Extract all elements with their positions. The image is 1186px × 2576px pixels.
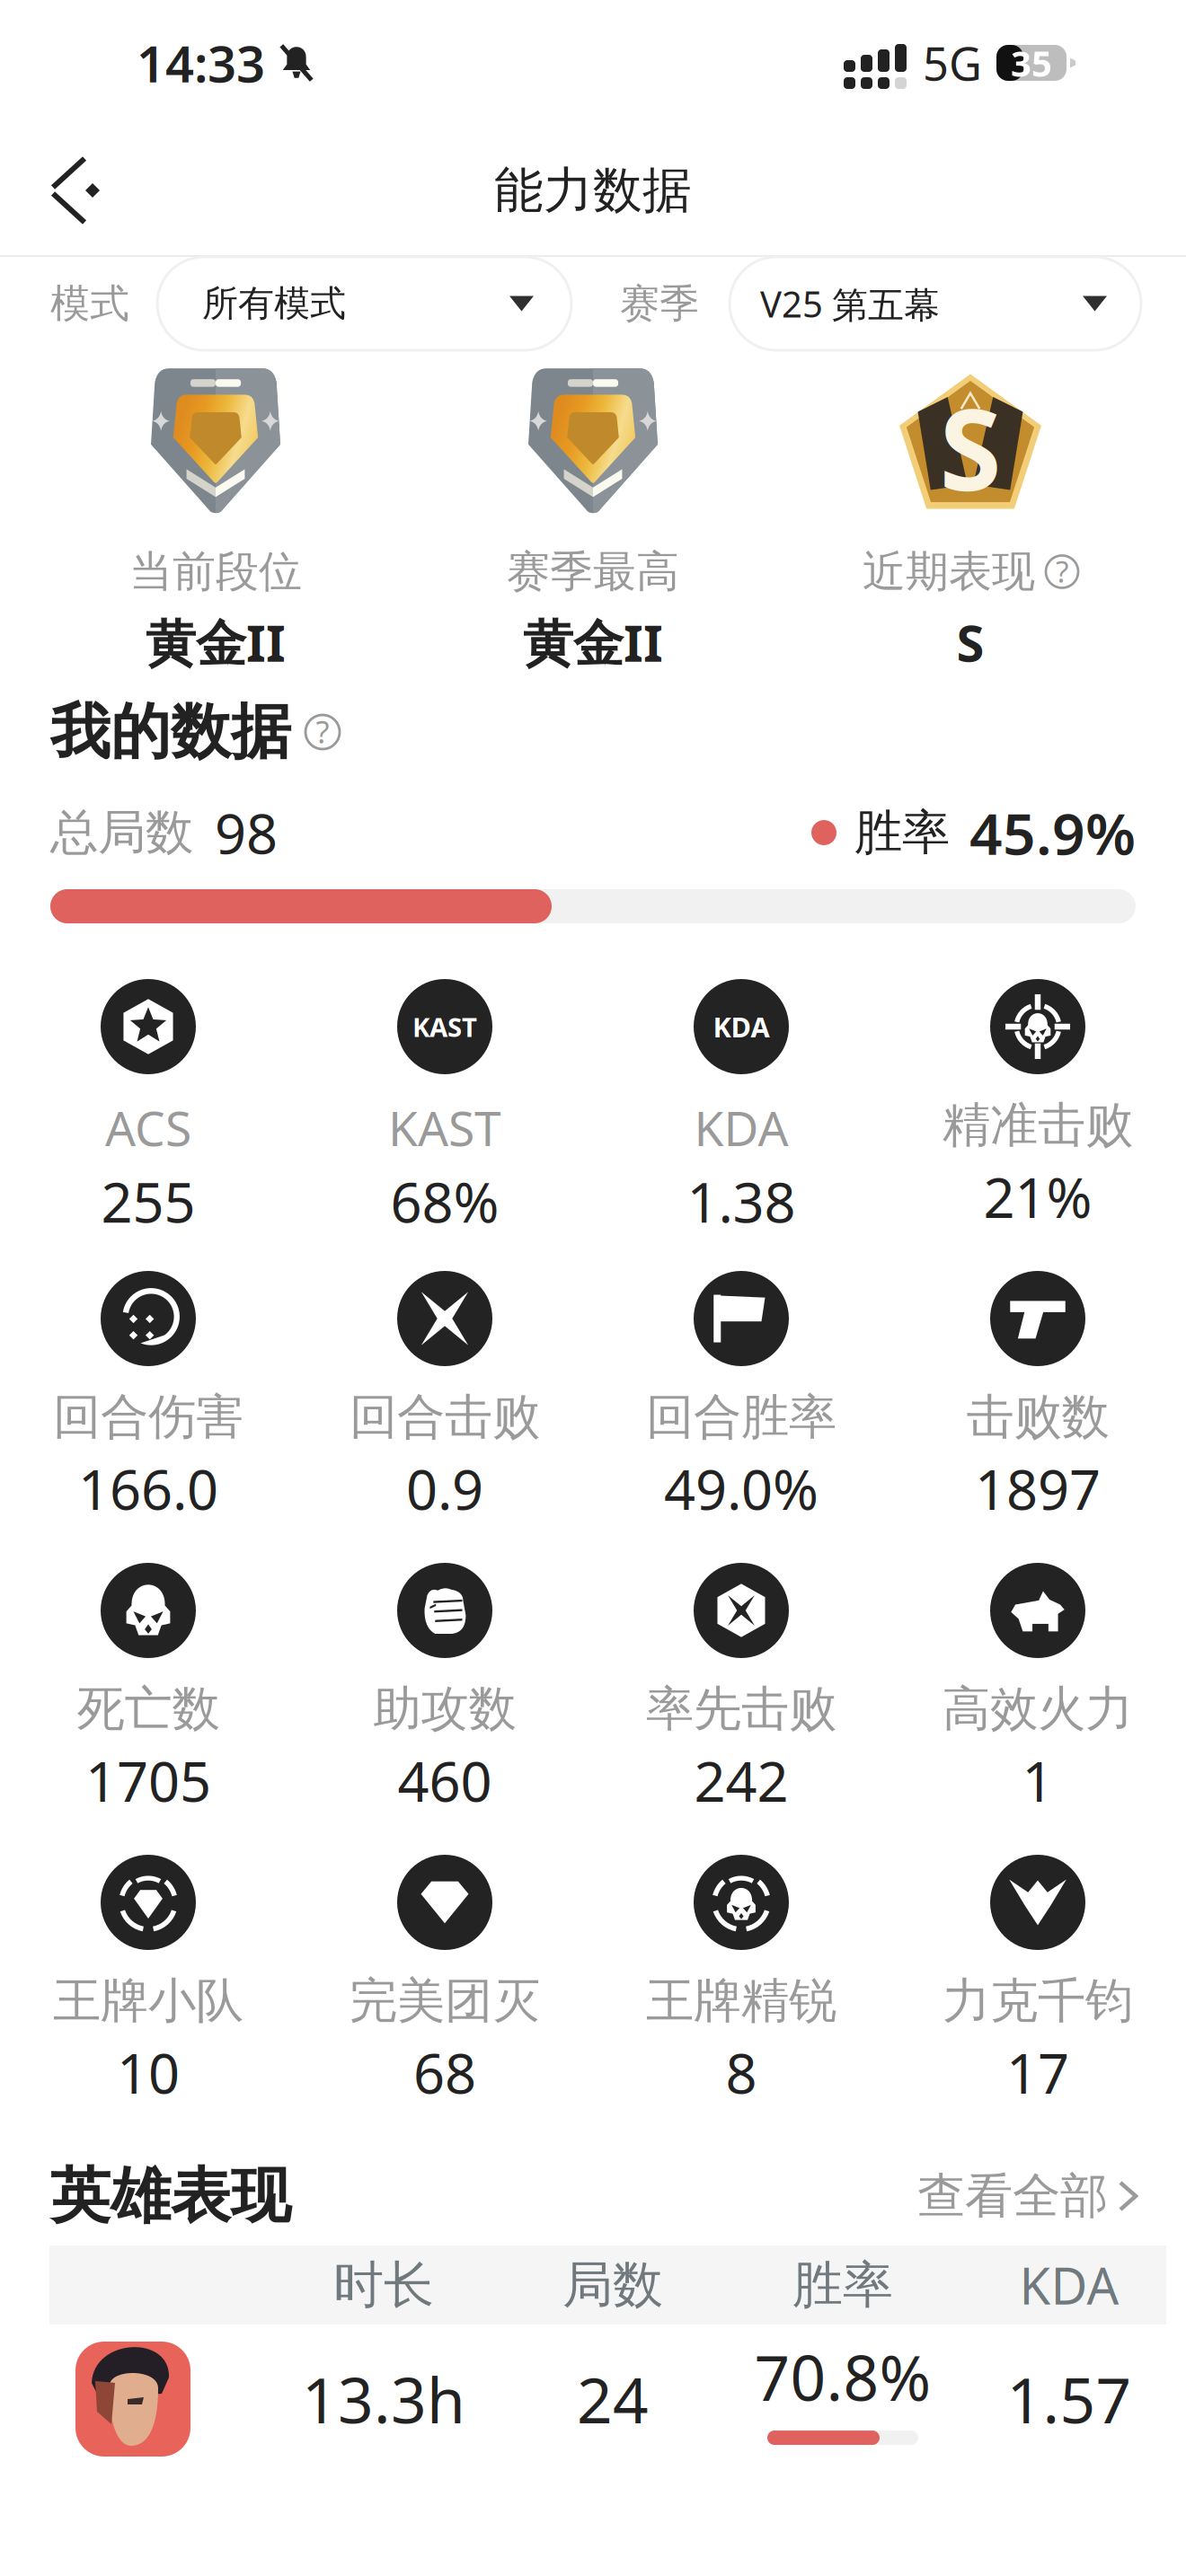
staticText: 我的数据 xyxy=(50,695,291,769)
staticText: 胜率 xyxy=(792,2254,893,2316)
staticText: 166.0 xyxy=(78,1452,218,1525)
button[interactable]: 回合击败 xyxy=(296,1271,593,1563)
staticText: 查看全部 xyxy=(917,2167,1108,2225)
staticText: 回合击败 xyxy=(350,1388,540,1447)
staticText: 242 xyxy=(694,1744,788,1817)
staticText: 35 xyxy=(1011,39,1052,87)
staticText: V25 第五幕 xyxy=(760,280,940,327)
staticText: 17 xyxy=(1006,2036,1069,2109)
button[interactable]: 率先击败 xyxy=(593,1563,889,1855)
staticText: ? xyxy=(1056,551,1068,591)
staticText: 助攻数 xyxy=(373,1680,516,1738)
staticText: 68% xyxy=(390,1165,499,1238)
staticText: 回合伤害 xyxy=(53,1388,243,1447)
button[interactable]: 回合胜率 xyxy=(593,1271,889,1563)
staticText: 0.9 xyxy=(406,1452,483,1525)
button[interactable]: KAST xyxy=(296,979,593,1271)
staticText: 13.3h xyxy=(302,2358,465,2440)
staticText: 英雄表现 xyxy=(50,2159,291,2233)
staticText: 总局数 xyxy=(50,803,193,862)
staticText: 率先击败 xyxy=(646,1680,836,1738)
staticText: 24 xyxy=(577,2358,649,2440)
staticText: KDA xyxy=(713,1008,770,1045)
button[interactable]: KDA xyxy=(593,979,889,1271)
staticText: 胜率 xyxy=(854,803,950,862)
staticText: 击败数 xyxy=(966,1388,1109,1447)
staticText: 赛季 xyxy=(620,279,699,328)
staticText: 49.0% xyxy=(664,1452,819,1525)
staticText: KAST xyxy=(412,1009,477,1044)
staticText: 精准击败 xyxy=(943,1096,1133,1155)
staticText: 力克千钧 xyxy=(943,1972,1133,2030)
staticText: ACS xyxy=(105,1096,191,1159)
button[interactable]: 力克千钧 xyxy=(889,1855,1186,2147)
button[interactable]: 高效火力 xyxy=(889,1563,1186,1855)
staticText: 王牌小队 xyxy=(53,1972,243,2030)
staticText: 70.8% xyxy=(754,2335,931,2418)
staticText: 14:33 xyxy=(137,29,265,96)
staticText: 王牌精锐 xyxy=(646,1972,836,2030)
staticText: 死亡数 xyxy=(77,1680,220,1738)
staticText: 460 xyxy=(398,1744,492,1817)
button[interactable]: 所有模式 xyxy=(157,257,571,350)
staticText: 5G xyxy=(923,33,982,93)
button[interactable]: 王牌小队 xyxy=(0,1855,296,2147)
staticText: 45.9% xyxy=(969,794,1136,871)
staticText: 1705 xyxy=(85,1744,211,1817)
staticText: 黄金II xyxy=(523,609,663,676)
staticText: 1897 xyxy=(975,1452,1101,1525)
staticText: 模式 xyxy=(50,279,129,328)
staticText: 1 xyxy=(1022,1744,1053,1817)
staticText: 10 xyxy=(117,2036,180,2109)
staticText: 当前段位 xyxy=(129,545,302,598)
button[interactable]: 死亡数 xyxy=(0,1563,296,1855)
staticText: S xyxy=(956,609,984,676)
staticText: KAST xyxy=(388,1096,501,1159)
button[interactable]: 助攻数 xyxy=(296,1563,593,1855)
button[interactable]: 王牌精锐 xyxy=(593,1855,889,2147)
staticText: 回合胜率 xyxy=(646,1388,836,1447)
staticText: 1.38 xyxy=(687,1165,796,1238)
button[interactable]: V25 第五幕 xyxy=(730,257,1141,350)
staticText: ? xyxy=(316,711,329,752)
staticText: 能力数据 xyxy=(494,160,692,221)
staticText: 8 xyxy=(726,2036,757,2109)
button[interactable]: 精准击败 xyxy=(889,979,1186,1271)
staticText: 完美团灭 xyxy=(350,1972,540,2030)
button[interactable]: ACS xyxy=(0,979,296,1271)
staticText: 近期表现 xyxy=(863,545,1035,598)
staticText: 赛季最高 xyxy=(507,545,679,598)
staticText: 时长 xyxy=(333,2254,434,2316)
staticText: 所有模式 xyxy=(202,281,346,326)
staticText: KDA xyxy=(1019,2252,1119,2318)
staticText: 98 xyxy=(215,796,278,869)
button[interactable]: 查看全部 xyxy=(917,2167,1136,2225)
button[interactable]: 返回 xyxy=(30,146,109,235)
staticText: 255 xyxy=(101,1165,195,1238)
staticText: 高效火力 xyxy=(943,1680,1133,1738)
staticText: 21% xyxy=(983,1160,1092,1233)
staticText: S xyxy=(939,372,1001,522)
button[interactable]: 回合伤害 xyxy=(0,1271,296,1563)
staticText: 68 xyxy=(413,2036,476,2109)
button[interactable]: 完美团灭 xyxy=(296,1855,593,2147)
staticText: 黄金II xyxy=(146,609,286,676)
button[interactable]: 13.3h xyxy=(49,2325,1166,2474)
staticText: 局数 xyxy=(562,2254,663,2316)
staticText: 1.57 xyxy=(1007,2358,1132,2440)
button[interactable]: 击败数 xyxy=(889,1271,1186,1563)
staticText: KDA xyxy=(694,1096,788,1159)
